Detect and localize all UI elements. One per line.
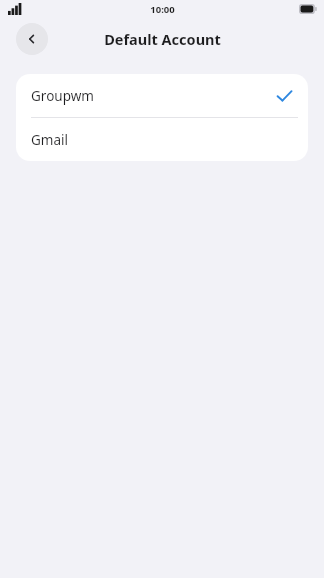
staticText: Default Account <box>104 29 221 49</box>
staticText: Gmail <box>31 131 68 149</box>
button[interactable]: Gmail <box>16 118 308 161</box>
staticText: Groupwm <box>31 87 94 105</box>
button[interactable]: Back <box>16 23 48 55</box>
button[interactable]: Groupwm <box>16 74 308 117</box>
staticText: 10:00 <box>150 3 175 16</box>
